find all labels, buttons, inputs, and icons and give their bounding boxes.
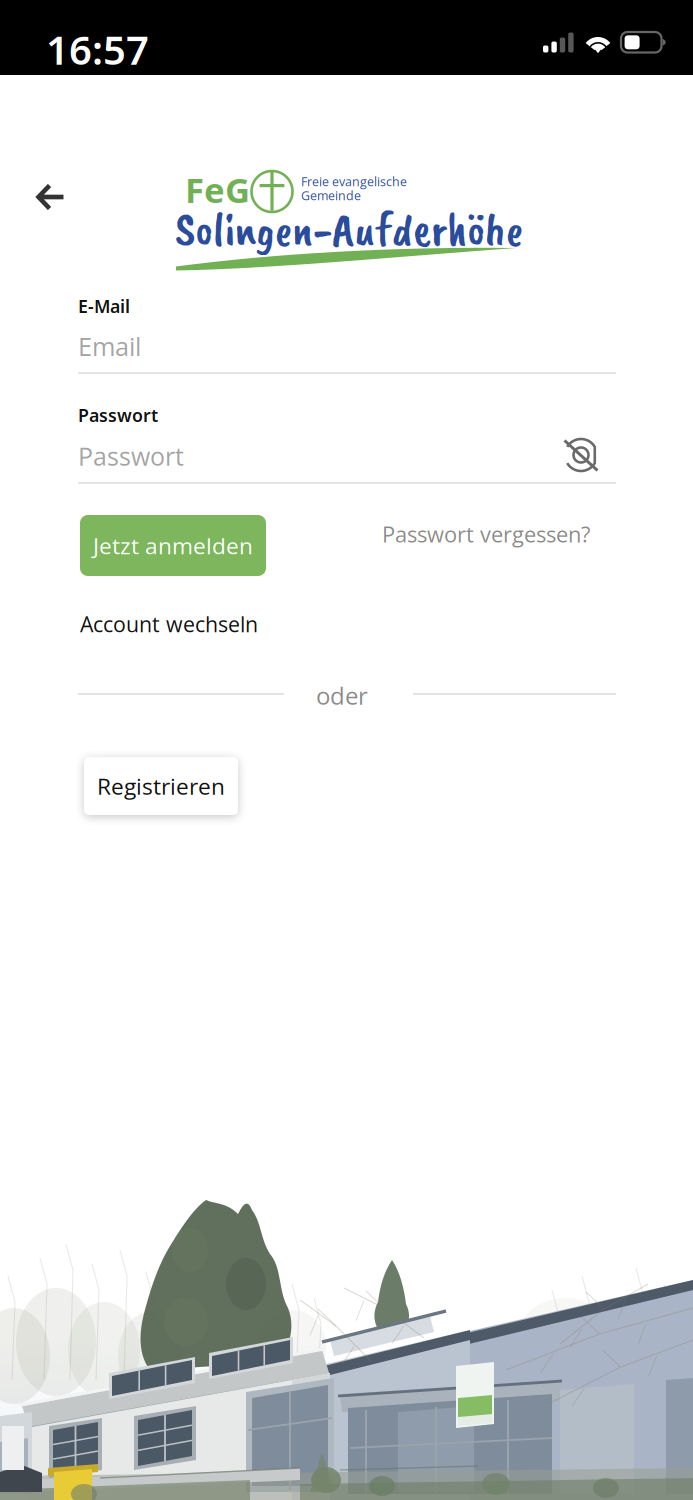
staticText: 16:57 <box>46 22 149 76</box>
staticText: Passwort <box>78 439 184 473</box>
button[interactable]: Zurück <box>22 168 80 226</box>
staticText: E-Mail <box>78 294 130 318</box>
staticText: Gemeinde <box>301 187 361 204</box>
staticText: Freie evangelische <box>301 173 407 190</box>
staticText: Jetzt anmelden <box>93 530 253 561</box>
staticText: Email <box>78 329 141 363</box>
staticText: Solingen-Aufderhöhe <box>175 199 523 259</box>
button[interactable]: Account wechseln <box>80 609 262 639</box>
staticText: FeG <box>185 166 250 213</box>
button[interactable]: Passwort vergessen? <box>382 519 597 549</box>
button[interactable]: Passwort anzeigen <box>552 428 612 484</box>
staticText: Passwort <box>78 403 158 427</box>
button[interactable]: Jetzt anmelden <box>80 515 266 576</box>
button[interactable]: Registrieren <box>84 757 238 815</box>
staticText: Registrieren <box>97 771 225 801</box>
staticText: Passwort vergessen? <box>382 519 590 549</box>
staticText: oder <box>316 679 368 712</box>
staticText: Account wechseln <box>80 609 258 639</box>
